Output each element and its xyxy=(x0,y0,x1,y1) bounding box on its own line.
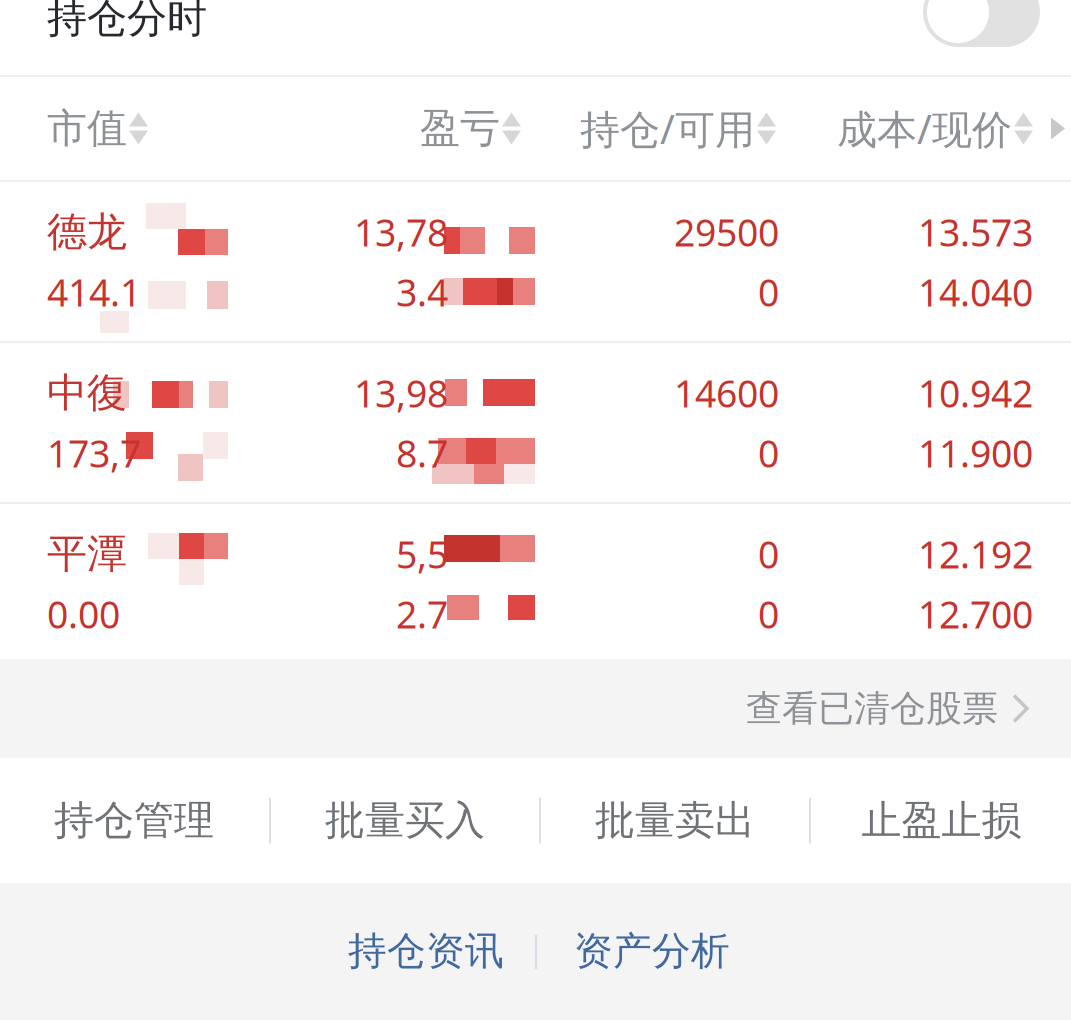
staticText: 29500 xyxy=(674,207,779,257)
button[interactable]: 德龙 xyxy=(0,182,1071,341)
staticText: 14.040 xyxy=(918,267,1033,317)
staticText: 0 xyxy=(758,428,779,478)
staticText: 批量买入 xyxy=(325,796,485,845)
staticText: 12.700 xyxy=(918,589,1033,639)
button[interactable]: 市值 xyxy=(47,104,148,153)
staticText: 市值 xyxy=(47,104,127,153)
button[interactable]: 盈亏 xyxy=(420,104,521,153)
button[interactable]: 平潭 xyxy=(0,504,1071,659)
button[interactable]: 成本/现价 xyxy=(837,102,1033,155)
staticText: 10.942 xyxy=(918,368,1033,418)
staticText: 12.192 xyxy=(918,529,1033,579)
staticText: 11.900 xyxy=(918,428,1033,478)
staticText: 中復 xyxy=(47,368,127,417)
button[interactable]: 持仓管理 xyxy=(0,758,269,883)
button[interactable]: 持仓/可用 xyxy=(580,102,776,155)
staticText: 平潭 xyxy=(47,529,127,578)
staticText: 批量卖出 xyxy=(595,796,755,845)
staticText: 13,98 xyxy=(354,368,448,418)
staticText: 3.4 xyxy=(396,267,448,317)
staticText: 查看已清仓股票 xyxy=(746,686,998,731)
staticText: 持仓资讯 xyxy=(348,927,504,975)
staticText: 盈亏 xyxy=(420,104,500,153)
staticText: 0 xyxy=(758,529,779,579)
button[interactable]: 资产分析 xyxy=(552,920,752,982)
staticText: 持仓/可用 xyxy=(580,102,755,155)
staticText: 2.7 xyxy=(396,589,448,639)
staticText: 13.573 xyxy=(918,207,1033,257)
staticText: 173,7 xyxy=(47,428,141,478)
button[interactable]: 持仓分时 xyxy=(0,0,1040,75)
staticText: 资产分析 xyxy=(574,927,730,975)
staticText: 止盈止损 xyxy=(861,796,1021,845)
staticText: 5,5 xyxy=(396,529,448,579)
staticText: 0 xyxy=(758,267,779,317)
staticText: 8.7 xyxy=(396,428,448,478)
staticText: 持仓管理 xyxy=(54,796,214,845)
button[interactable]: 止盈止损 xyxy=(811,758,1071,883)
staticText: 0.00 xyxy=(47,589,120,639)
staticText: 414.1 xyxy=(47,267,141,317)
staticText: 0 xyxy=(758,589,779,639)
button[interactable]: 中復 xyxy=(0,343,1071,502)
button[interactable]: 批量卖出 xyxy=(541,758,809,883)
staticText: 13,78 xyxy=(354,207,448,257)
staticText: 成本/现价 xyxy=(837,102,1012,155)
button[interactable]: 批量买入 xyxy=(271,758,539,883)
staticText: 持仓分时 xyxy=(47,0,207,43)
staticText: 德龙 xyxy=(47,207,127,256)
button[interactable]: 查看已清仓股票 xyxy=(0,659,1071,758)
button[interactable]: 持仓资讯 xyxy=(326,920,526,982)
staticText: 14600 xyxy=(674,368,779,418)
